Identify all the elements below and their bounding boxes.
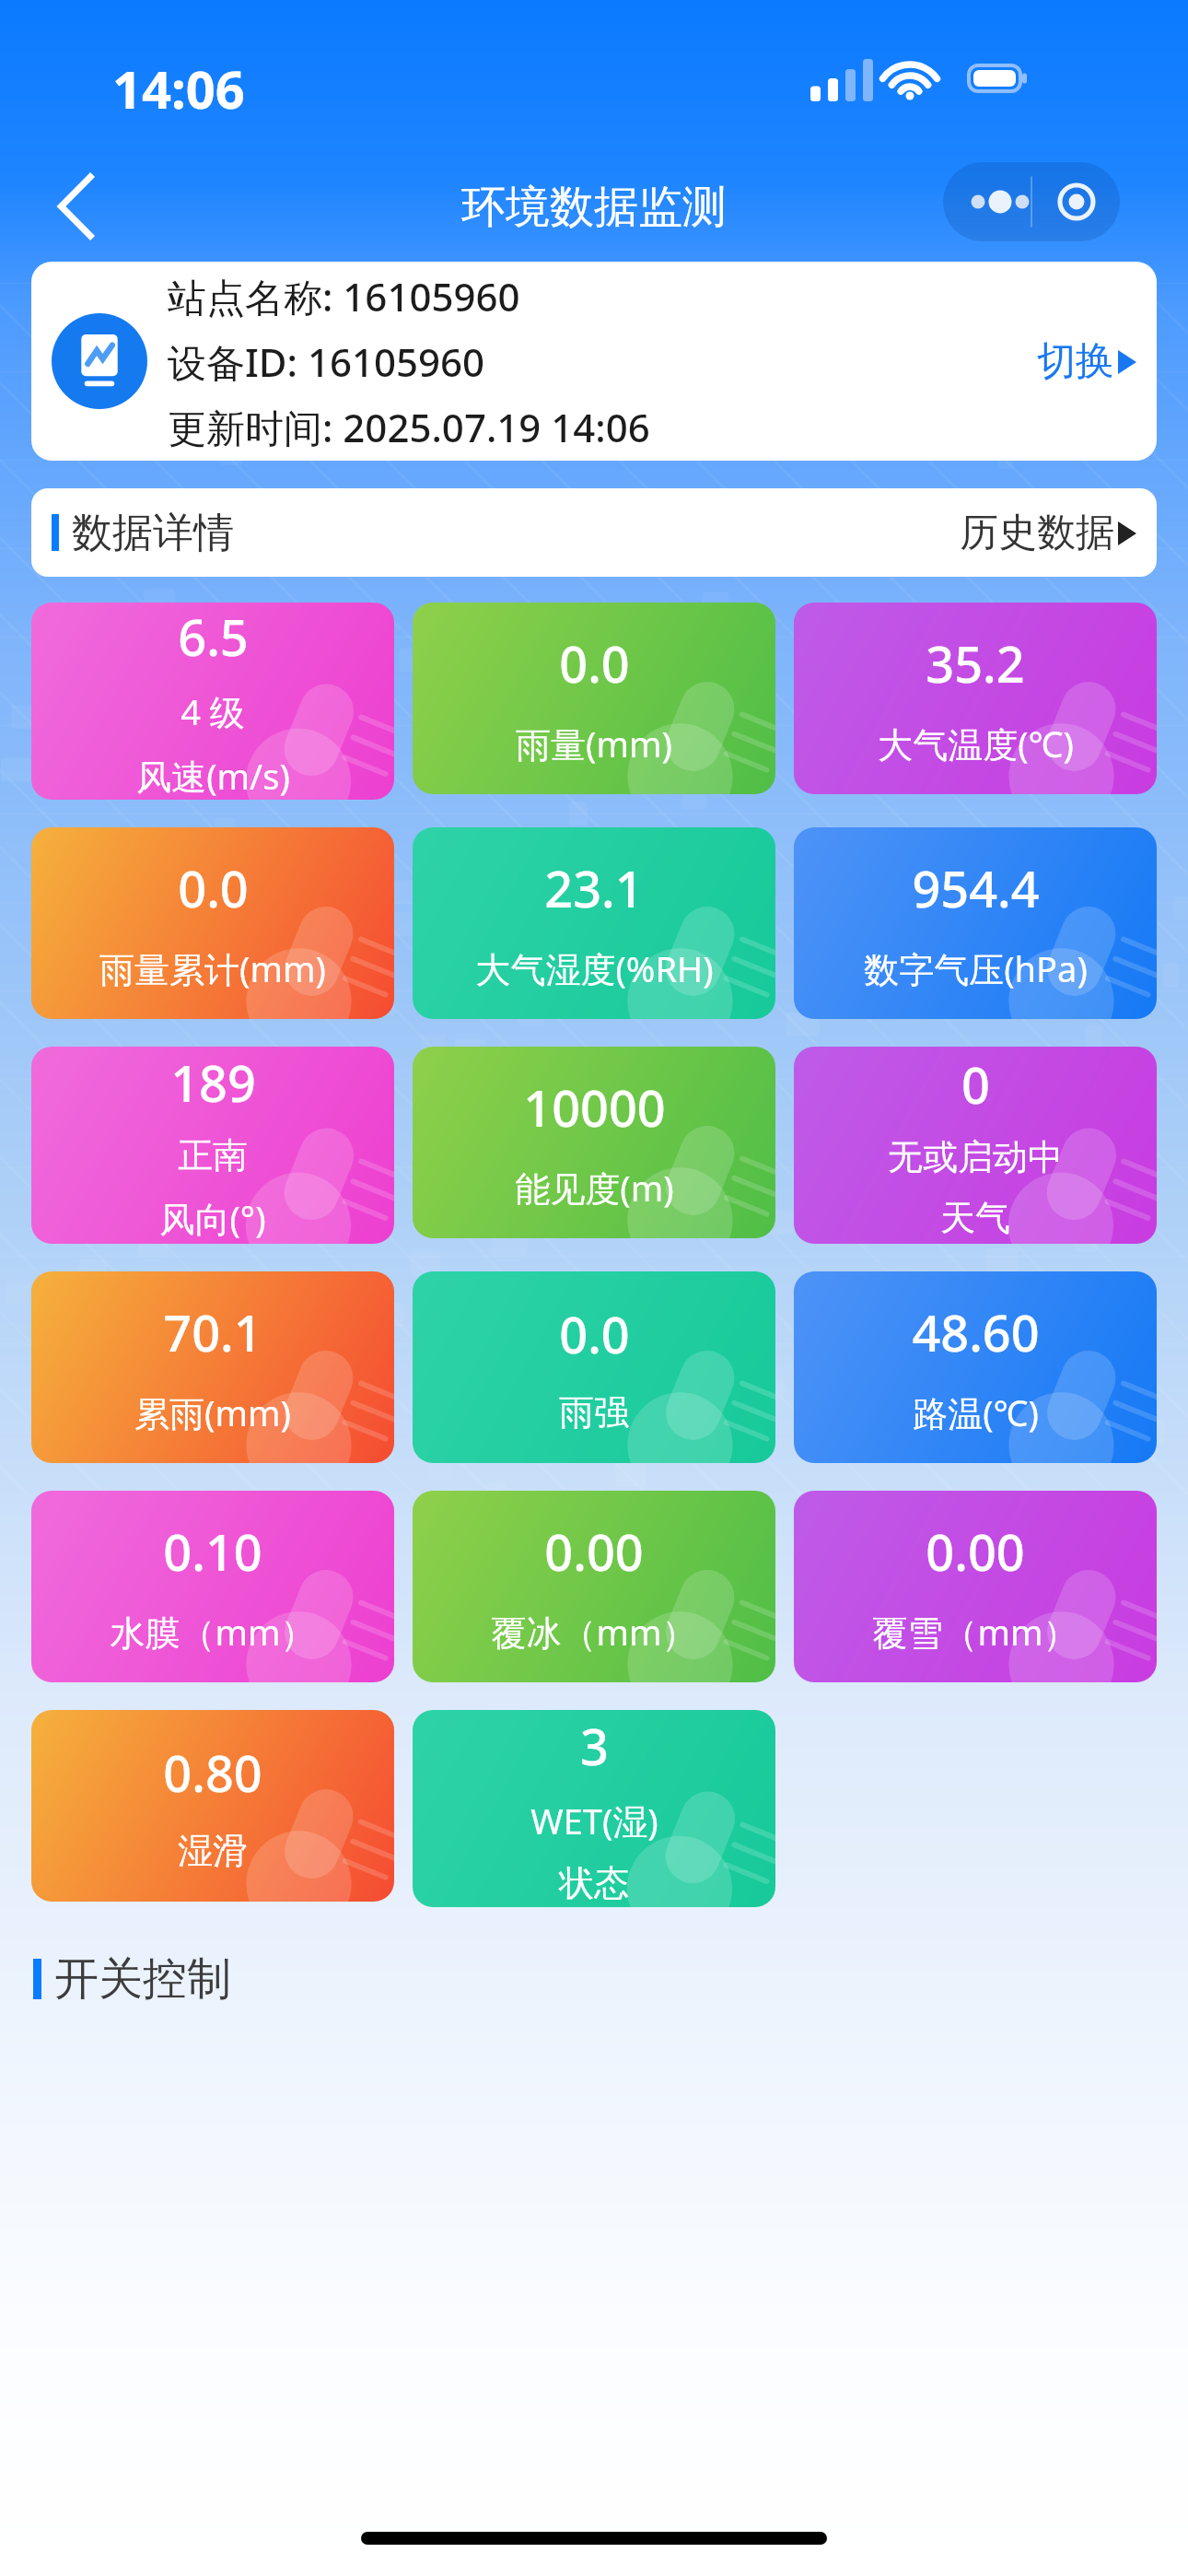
staticText: 0.00 xyxy=(544,1517,644,1586)
staticText: 0.80 xyxy=(163,1739,262,1807)
staticText: 数据详情 xyxy=(72,508,234,558)
staticText: 大气温度(℃) xyxy=(878,720,1074,767)
staticText: 0.0 xyxy=(178,854,249,922)
staticText: 历史数据 xyxy=(960,509,1114,557)
button[interactable]: 189 xyxy=(31,1047,394,1244)
staticText: 14:06 xyxy=(112,53,245,123)
staticText: 0.0 xyxy=(559,629,630,697)
staticText: 0.0 xyxy=(559,1300,630,1368)
staticText: 数字气压(hPa) xyxy=(864,944,1088,992)
staticText: 更新时间: 2025.07.19 14:06 xyxy=(168,401,650,453)
staticText: 雨量累计(mm) xyxy=(99,944,326,992)
button[interactable]: 0.80 xyxy=(31,1710,394,1902)
button[interactable]: 0.00 xyxy=(413,1491,775,1682)
staticText: 能见度(m) xyxy=(515,1164,674,1212)
staticText: WET(湿) xyxy=(530,1797,658,1844)
staticText: 设备ID: 16105960 xyxy=(168,335,485,388)
staticText: 风速(m/s) xyxy=(136,752,290,800)
staticText: 大气湿度(%RH) xyxy=(475,944,714,992)
button[interactable]: 70.1 xyxy=(31,1271,394,1463)
staticText: 48.60 xyxy=(912,1298,1040,1366)
button[interactable]: 954.4 xyxy=(794,827,1157,1019)
button[interactable]: 0 xyxy=(794,1047,1157,1244)
button[interactable]: 0.10 xyxy=(31,1491,394,1682)
staticText: 正南 xyxy=(178,1133,248,1177)
button[interactable]: 0.0 xyxy=(31,827,394,1019)
staticText: 6.5 xyxy=(178,603,249,671)
staticText: 10000 xyxy=(523,1073,666,1142)
staticText: 路温(℃) xyxy=(913,1388,1039,1436)
staticText: 0 xyxy=(961,1050,990,1118)
button[interactable]: 站点名称: 16105960 xyxy=(31,262,1157,461)
button[interactable]: 23.1 xyxy=(413,827,775,1019)
staticText: 湿滑 xyxy=(178,1829,248,1873)
button[interactable]: 0.00 xyxy=(794,1491,1157,1682)
staticText: 站点名称: 16105960 xyxy=(168,270,520,322)
staticText: 雨强 xyxy=(559,1390,629,1434)
staticText: 954.4 xyxy=(912,854,1040,922)
staticText: 风向(°) xyxy=(159,1194,266,1242)
button[interactable]: 48.60 xyxy=(794,1271,1157,1463)
staticText: 23.1 xyxy=(544,854,644,922)
button[interactable]: Back xyxy=(33,162,122,251)
staticText: 无或启动中 xyxy=(888,1135,1063,1179)
button[interactable]: 切换 xyxy=(1037,337,1136,386)
button[interactable]: 35.2 xyxy=(794,603,1157,794)
staticText: 35.2 xyxy=(926,629,1025,697)
staticText: 水膜（mm） xyxy=(110,1608,316,1656)
button[interactable]: 历史数据 xyxy=(960,509,1136,557)
staticText: 70.1 xyxy=(163,1298,262,1366)
staticText: 开关控制 xyxy=(54,1951,231,2007)
staticText: 覆雪（mm） xyxy=(872,1608,1078,1656)
button[interactable]: 3 xyxy=(413,1710,775,1907)
staticText: 0.00 xyxy=(926,1517,1025,1586)
staticText: 4 级 xyxy=(181,687,245,735)
button[interactable]: 0.0 xyxy=(413,603,775,794)
staticText: 雨量(mm) xyxy=(516,720,672,767)
staticText: 覆冰（mm） xyxy=(491,1608,697,1656)
staticText: 累雨(mm) xyxy=(134,1388,291,1436)
button[interactable]: More and Close xyxy=(943,162,1120,241)
staticText: 3 xyxy=(580,1712,609,1780)
staticText: 189 xyxy=(170,1048,256,1117)
staticText: 状态 xyxy=(559,1861,629,1905)
button[interactable]: 6.5 xyxy=(31,603,394,800)
staticText: 环境数据监测 xyxy=(461,180,727,235)
button[interactable]: 0.0 xyxy=(413,1271,775,1463)
staticText: 切换 xyxy=(1037,337,1114,386)
staticText: 天气 xyxy=(940,1196,1010,1240)
staticText: 0.10 xyxy=(163,1517,262,1586)
button[interactable]: 10000 xyxy=(413,1047,775,1238)
